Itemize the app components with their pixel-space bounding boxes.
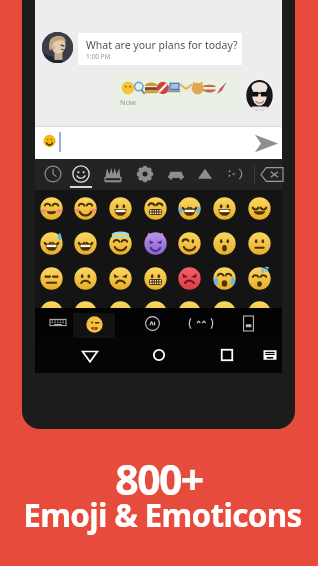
button[interactable]: Emoji — [109, 197, 132, 220]
button[interactable]: Emoji — [109, 267, 132, 290]
staticText: Now — [120, 97, 136, 107]
button[interactable]: Keyboard — [50, 316, 66, 329]
button[interactable]: Emoji — [213, 197, 236, 220]
button[interactable]: Send — [255, 134, 278, 153]
button[interactable]: Emoji — [74, 301, 97, 324]
button[interactable]: Emoji — [144, 301, 167, 324]
button[interactable]: Home — [150, 347, 168, 363]
button[interactable]: Emoji — [178, 301, 201, 324]
button[interactable]: Emoji — [40, 197, 63, 220]
button[interactable]: Emoji — [74, 197, 97, 220]
button[interactable]: Kaomoji — [189, 316, 213, 331]
button[interactable]: Art — [145, 316, 160, 331]
staticText: 1:00 PM — [86, 52, 111, 61]
button[interactable]: Emoji — [109, 232, 132, 255]
button[interactable]: Emoji — [178, 267, 201, 290]
button[interactable]: Emoticons — [224, 163, 246, 185]
button[interactable]: Emoji — [40, 267, 63, 290]
button[interactable]: Objects — [194, 163, 216, 185]
button[interactable]: Top — [102, 163, 124, 185]
button[interactable]: Emoji — [248, 197, 271, 220]
button[interactable]: Emoji — [213, 232, 236, 255]
button[interactable]: Emoji — [144, 197, 167, 220]
button[interactable]: Switch keyboard — [261, 348, 279, 362]
staticText: 800+ — [115, 451, 203, 507]
button[interactable]: Travel — [165, 163, 187, 185]
button[interactable]: GIF — [242, 316, 255, 331]
button[interactable]: Emoji — [109, 301, 132, 324]
button[interactable]: Emoji — [248, 232, 271, 255]
button[interactable]: Smileys — [70, 163, 92, 185]
button[interactable]: Emoji — [144, 232, 167, 255]
button[interactable]: Backspace — [260, 165, 284, 184]
button[interactable]: Back — [81, 347, 99, 363]
button[interactable]: Emoji — [73, 313, 115, 342]
button[interactable]: Emoji — [248, 301, 271, 324]
button[interactable]: What are your plans for today? — [78, 33, 242, 65]
button[interactable]: Emoji — [178, 232, 201, 255]
staticText: What are your plans for today? — [86, 38, 238, 52]
button[interactable]: Nature — [134, 163, 156, 185]
button[interactable]: Emoji — [74, 267, 97, 290]
button[interactable]: Contact avatar — [42, 32, 73, 63]
button[interactable]: Emoji — [40, 232, 63, 255]
button[interactable]: Emoji — [40, 301, 63, 324]
button[interactable]: Recent — [42, 163, 64, 185]
button[interactable]: Emoji — [213, 267, 236, 290]
staticText: Emoji & Emoticons — [23, 493, 302, 536]
button[interactable]: Emoji — [178, 197, 201, 220]
button[interactable]: Your avatar — [243, 78, 276, 111]
button[interactable]: Emoji — [213, 301, 236, 324]
button[interactable]: Now — [115, 75, 238, 111]
button[interactable]: Emoji — [74, 232, 97, 255]
button[interactable]: Emoji — [144, 267, 167, 290]
button[interactable]: Recents — [218, 347, 236, 363]
button[interactable]: Emoji — [248, 267, 271, 290]
